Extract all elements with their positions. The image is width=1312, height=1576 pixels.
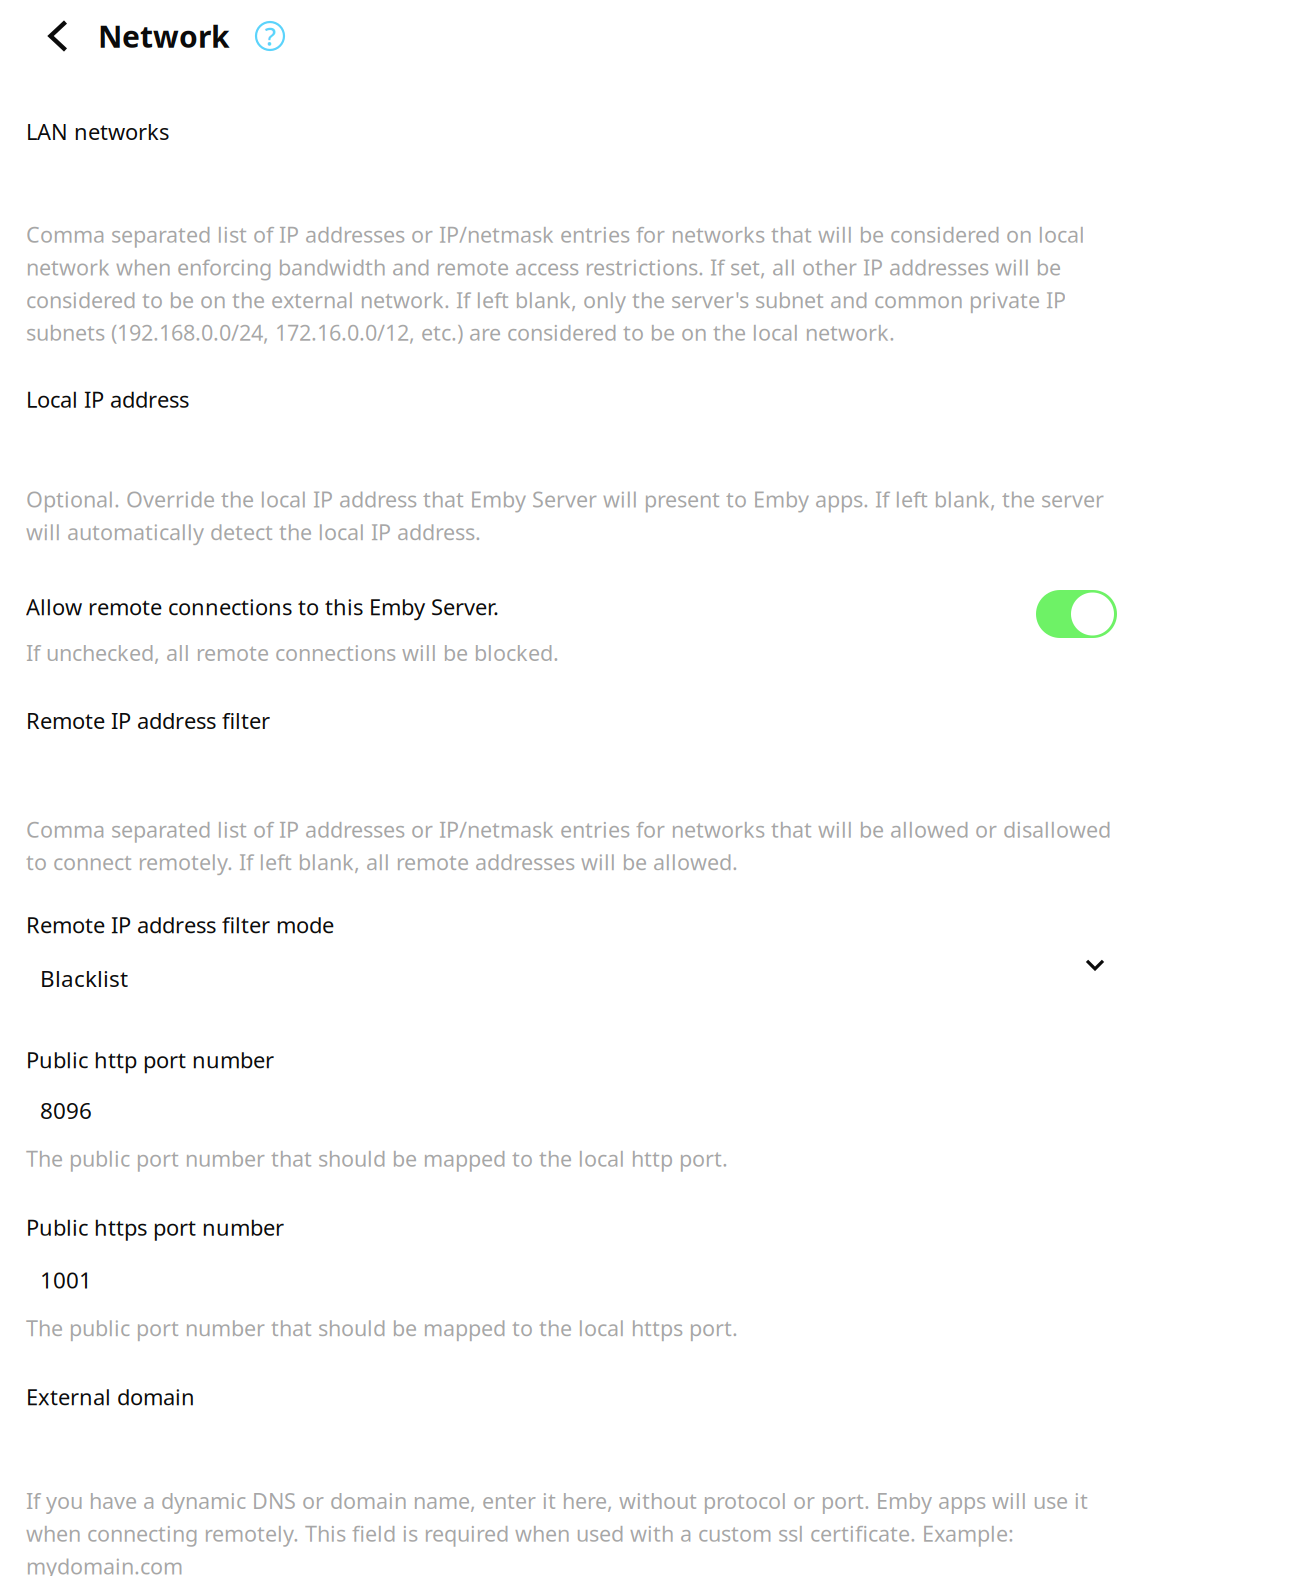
staticText: Public http port number bbox=[26, 1045, 274, 1074]
staticText: The public port number that should be ma… bbox=[26, 1144, 728, 1173]
staticText: 8096 bbox=[40, 1095, 92, 1125]
staticText: Remote IP address filter mode bbox=[26, 910, 334, 939]
staticText: Blacklist bbox=[40, 963, 128, 993]
staticText: Comma separated list of IP addresses or … bbox=[26, 815, 1111, 876]
staticText: ? bbox=[264, 19, 275, 53]
staticText: Public https port number bbox=[26, 1213, 284, 1242]
staticText: Local IP address bbox=[26, 385, 189, 414]
staticText: Allow remote connections to this Emby Se… bbox=[26, 592, 499, 621]
staticText: Remote IP address filter bbox=[26, 706, 270, 735]
button[interactable]: Allow remote connections bbox=[1036, 590, 1117, 638]
staticText: If unchecked, all remote connections wil… bbox=[26, 638, 559, 667]
staticText: Comma separated list of IP addresses or … bbox=[26, 220, 1085, 347]
staticText: Optional. Override the local IP address … bbox=[26, 485, 1104, 546]
staticText: LAN networks bbox=[26, 117, 169, 146]
staticText: Network bbox=[98, 16, 230, 56]
staticText: External domain bbox=[26, 1382, 195, 1411]
button[interactable]: Help bbox=[249, 15, 291, 57]
staticText: The public port number that should be ma… bbox=[26, 1314, 738, 1342]
button[interactable]: Back bbox=[31, 9, 85, 63]
button[interactable]: Blacklist bbox=[26, 963, 1105, 995]
staticText: If you have a dynamic DNS or domain name… bbox=[26, 1486, 1088, 1576]
staticText: 1001 bbox=[40, 1265, 92, 1295]
